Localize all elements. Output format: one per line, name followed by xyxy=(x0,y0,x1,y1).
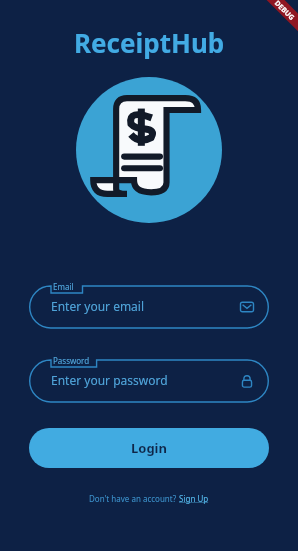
button[interactable]: Password xyxy=(29,352,269,402)
staticText: Email xyxy=(53,281,74,292)
staticText: Don't have an account? xyxy=(89,493,179,504)
staticText: Enter your email xyxy=(51,298,145,314)
staticText: Sign Up xyxy=(179,493,209,504)
button[interactable]: Email xyxy=(239,292,269,322)
other: DEBUG banner xyxy=(242,0,298,56)
staticText: Password xyxy=(53,355,90,366)
staticText: Enter your password xyxy=(51,372,168,388)
button[interactable]: Email xyxy=(29,278,269,328)
button[interactable]: Show password xyxy=(239,366,269,396)
button[interactable]: Don't have an account? xyxy=(81,490,217,507)
staticText: DEBUG xyxy=(272,0,297,23)
staticText: Login xyxy=(131,439,167,457)
button[interactable]: Login xyxy=(29,428,269,468)
staticText: ReceiptHub xyxy=(74,25,225,60)
